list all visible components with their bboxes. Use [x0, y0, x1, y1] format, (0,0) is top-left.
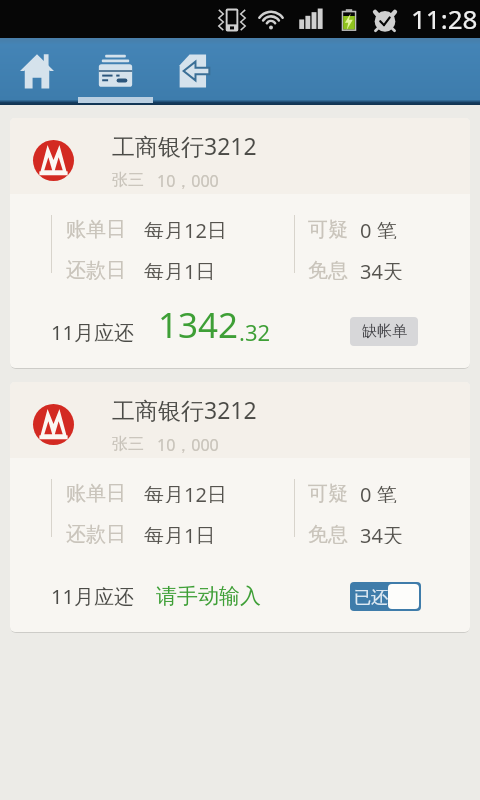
- button[interactable]: Mark as repaid: [350, 582, 421, 611]
- staticText: 账单日: [66, 217, 126, 239]
- staticText: 请手动输入: [156, 583, 261, 609]
- staticText: 免息: [308, 522, 348, 544]
- staticText: 可疑: [308, 217, 348, 239]
- staticText: 张三: [112, 170, 144, 190]
- staticText: 每月1日: [144, 522, 216, 544]
- button[interactable]: Import: [154, 38, 231, 105]
- button[interactable]: 缺帐单: [350, 317, 418, 346]
- staticText: 缺帐单: [362, 322, 407, 341]
- staticText: 每月12日: [144, 217, 227, 239]
- staticText: 1342: [158, 301, 239, 349]
- staticText: .32: [239, 317, 271, 347]
- staticText: 34天: [360, 522, 403, 544]
- staticText: 还款日: [66, 258, 126, 280]
- staticText: 0 笔: [360, 481, 397, 503]
- button[interactable]: Cards: [77, 38, 154, 105]
- staticText: 张三: [112, 434, 144, 454]
- staticText: 10，000: [157, 434, 219, 456]
- staticText: 已还: [354, 587, 388, 608]
- button[interactable]: Home: [0, 38, 77, 105]
- staticText: 每月12日: [144, 481, 227, 503]
- staticText: 每月1日: [144, 258, 216, 280]
- staticText: 0 笔: [360, 217, 397, 239]
- button[interactable]: 工商银行3212: [10, 118, 470, 368]
- button[interactable]: 工商银行3212: [10, 382, 470, 632]
- staticText: 工商银行3212: [112, 130, 257, 161]
- staticText: 11:28: [411, 1, 478, 36]
- staticText: 11月应还: [51, 583, 134, 610]
- staticText: 10，000: [157, 170, 219, 192]
- staticText: 11月应还: [51, 319, 134, 346]
- staticText: 34天: [360, 258, 403, 280]
- staticText: 免息: [308, 258, 348, 280]
- staticText: 可疑: [308, 481, 348, 503]
- staticText: 还款日: [66, 522, 126, 544]
- staticText: 账单日: [66, 481, 126, 503]
- staticText: 工商银行3212: [112, 394, 257, 425]
